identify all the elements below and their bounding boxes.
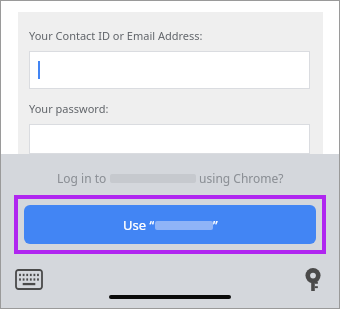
button[interactable] <box>29 124 310 154</box>
staticText: Your Contact ID or Email Address: <box>29 28 203 43</box>
button[interactable]: Use “ <box>24 205 316 244</box>
button[interactable]: Keyboard <box>16 270 42 289</box>
staticText: using Chrome? <box>196 170 284 186</box>
button[interactable] <box>29 51 310 89</box>
staticText: Log in to <box>57 170 110 186</box>
staticText: ” <box>213 216 218 234</box>
staticText: Your password: <box>29 101 109 116</box>
staticText: Use “ <box>123 216 155 234</box>
button[interactable]: Passwords <box>304 267 322 291</box>
